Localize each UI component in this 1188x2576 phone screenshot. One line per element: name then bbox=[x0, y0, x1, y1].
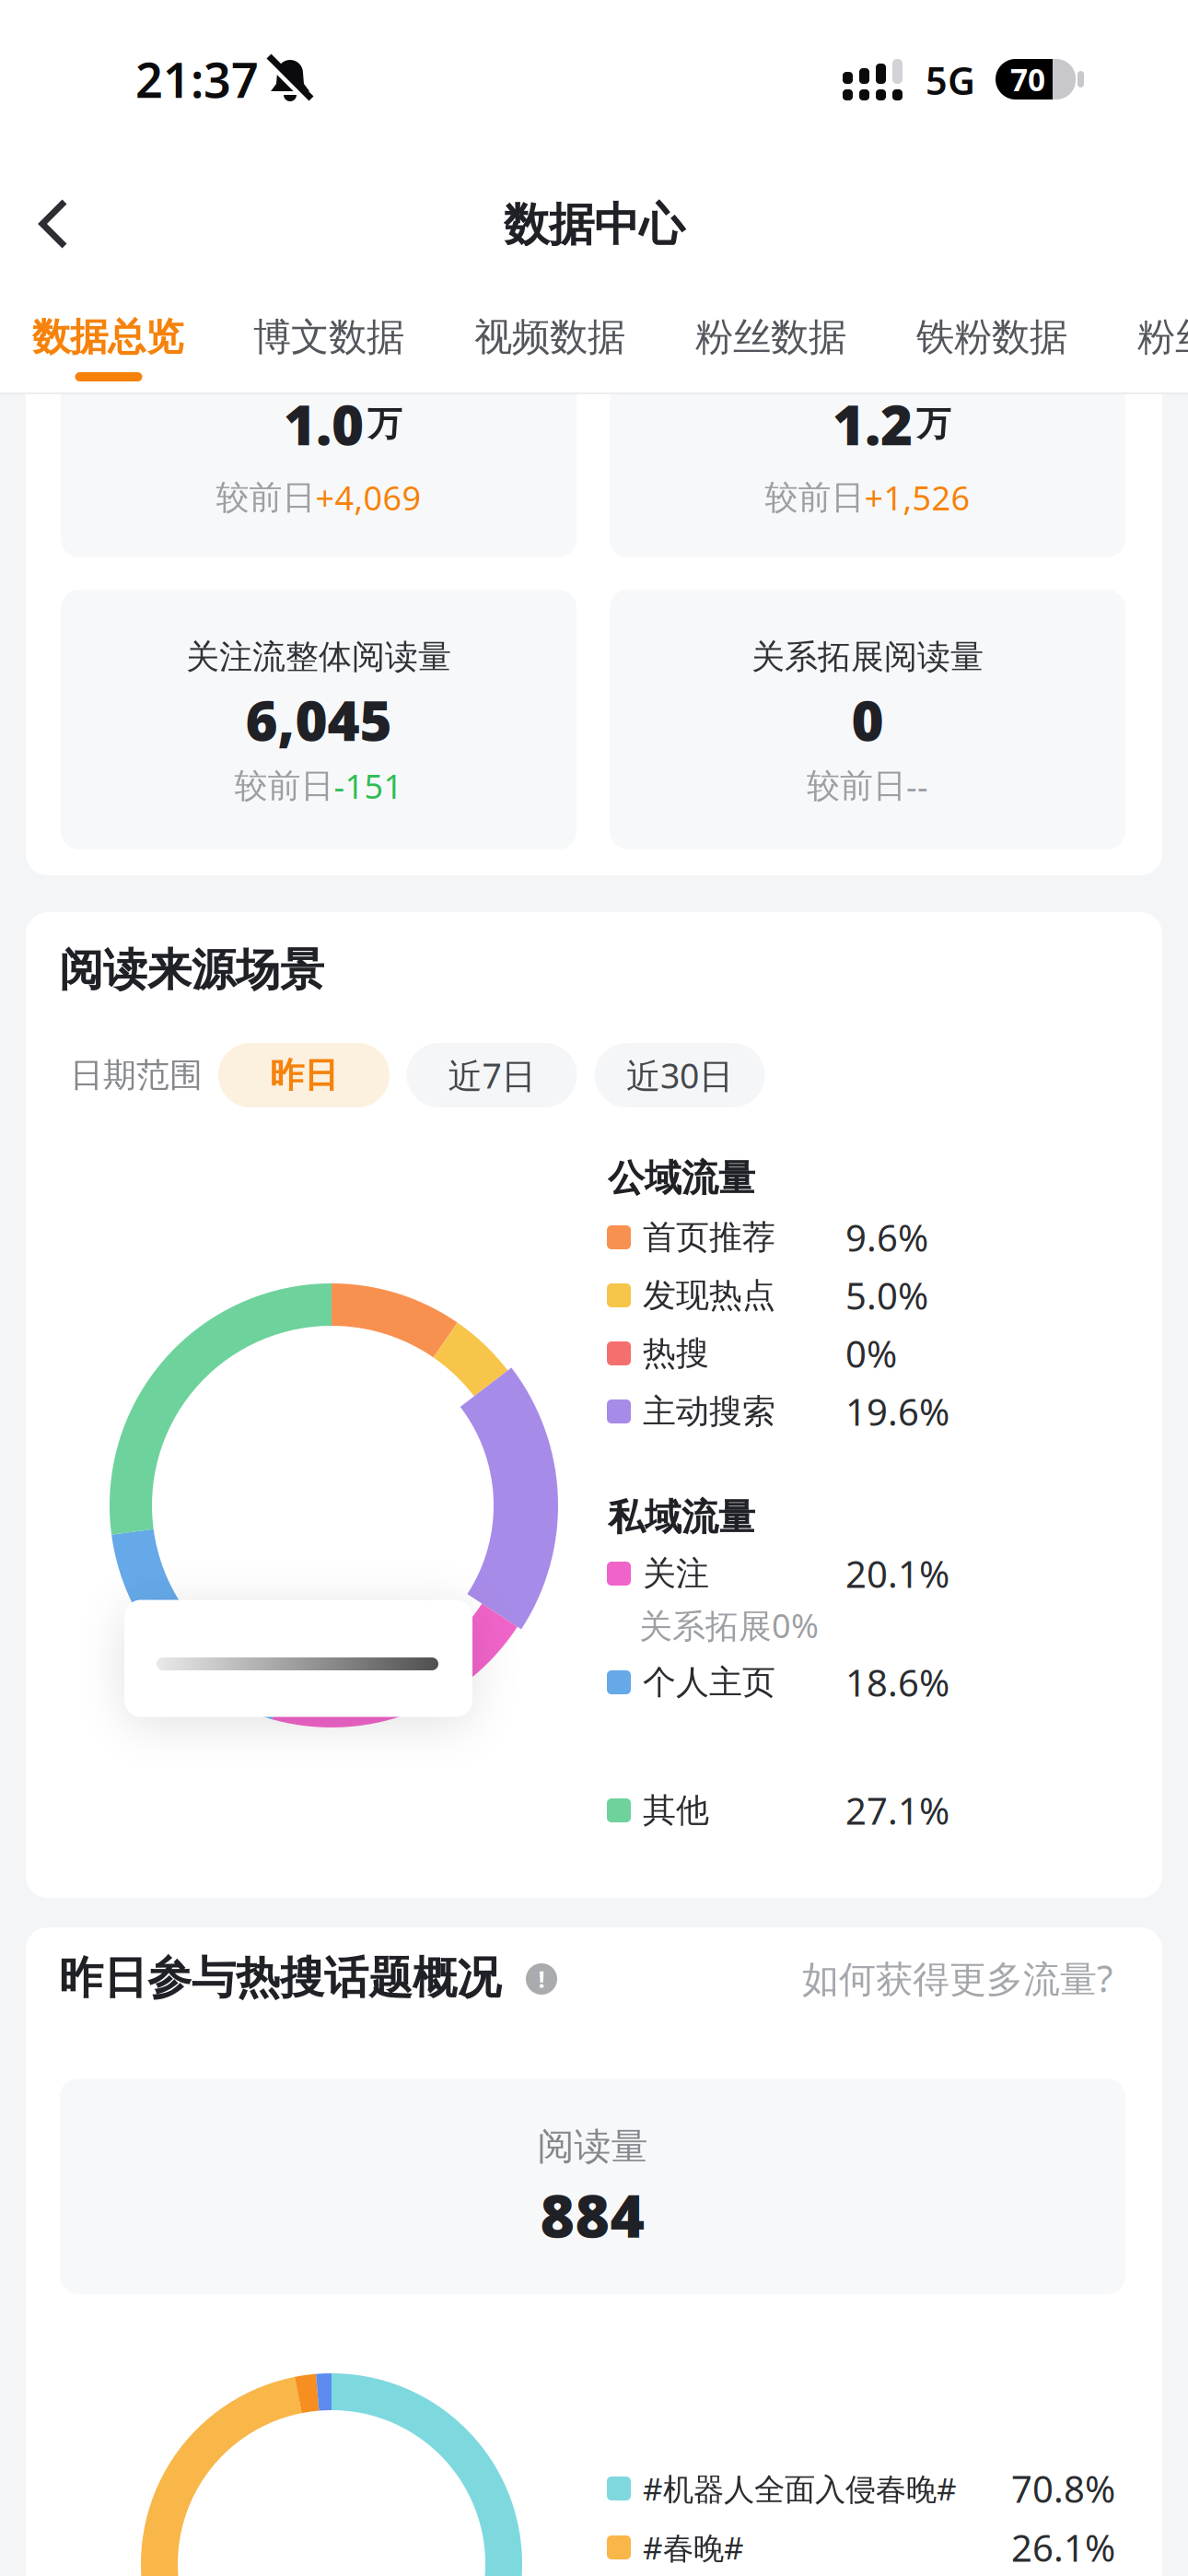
staticText: 27.1% bbox=[845, 1786, 949, 1835]
staticText: 19.6% bbox=[845, 1387, 949, 1436]
staticText: 热搜 bbox=[643, 1333, 709, 1374]
staticText: ! bbox=[538, 1964, 545, 1994]
staticText: 9.6% bbox=[845, 1213, 928, 1262]
staticText: -151 bbox=[334, 764, 403, 808]
staticText: 粉丝数据 bbox=[1137, 314, 1188, 361]
staticText: 5G bbox=[926, 55, 975, 105]
staticText: 5.0% bbox=[845, 1271, 928, 1320]
staticText: 公域流量 bbox=[608, 1156, 755, 1201]
staticText: 昨日参与热搜话题概况 bbox=[59, 1951, 501, 2005]
staticText: 1.2 bbox=[833, 387, 913, 461]
staticText: 884 bbox=[540, 2176, 645, 2254]
staticText: 较前日 bbox=[765, 477, 864, 518]
staticText: 日期范围 bbox=[70, 1055, 203, 1096]
staticText: 发现热点 bbox=[643, 1275, 775, 1316]
staticText: 近30日 bbox=[626, 1052, 733, 1098]
staticText: +1,526 bbox=[864, 475, 970, 520]
staticText: 较前日 bbox=[807, 766, 906, 806]
staticText: 1.0 bbox=[284, 387, 364, 461]
staticText: 个人主页 bbox=[643, 1662, 775, 1703]
staticText: 数据中心 bbox=[504, 197, 684, 253]
staticText: #春晚# bbox=[643, 2527, 744, 2568]
button[interactable]: 视频数据 bbox=[474, 314, 625, 361]
staticText: 关系拓展0% bbox=[639, 1603, 819, 1647]
staticText: 数据总览 bbox=[32, 314, 183, 361]
button[interactable]: 铁粉数据 bbox=[916, 314, 1067, 361]
button[interactable]: 博文数据 bbox=[253, 314, 404, 361]
button[interactable]: 数据总览 bbox=[32, 314, 183, 361]
staticText: 26.1% bbox=[1011, 2523, 1115, 2572]
staticText: 阅读来源场景 bbox=[59, 943, 324, 997]
button[interactable]: 昨日 bbox=[218, 1043, 390, 1107]
staticText: 昨日 bbox=[270, 1054, 338, 1096]
button[interactable]: 如何获得更多流量? bbox=[744, 1952, 1112, 2004]
staticText: 6,045 bbox=[245, 683, 392, 756]
staticText: 私域流量 bbox=[608, 1495, 755, 1540]
staticText: -- bbox=[906, 764, 928, 808]
staticText: 阅读量 bbox=[537, 2124, 648, 2169]
button[interactable]: 粉丝数据 bbox=[1137, 314, 1188, 361]
staticText: #机器人全面入侵春晚# bbox=[643, 2468, 957, 2509]
button[interactable]: 说明 bbox=[526, 1963, 557, 1995]
button[interactable]: 近7日 bbox=[407, 1043, 577, 1107]
staticText: 关注 bbox=[643, 1553, 709, 1594]
staticText: 0 bbox=[851, 683, 884, 756]
staticText: 万 bbox=[916, 403, 950, 445]
staticText: 万 bbox=[367, 403, 402, 445]
staticText: 视频数据 bbox=[474, 314, 625, 361]
staticText: +4,069 bbox=[315, 475, 421, 520]
staticText: 关注流整体阅读量 bbox=[186, 637, 451, 677]
staticText: 70.8% bbox=[1011, 2464, 1115, 2513]
staticText: 铁粉数据 bbox=[916, 314, 1067, 361]
staticText: 18.6% bbox=[845, 1658, 949, 1707]
staticText: 较前日 bbox=[216, 477, 315, 518]
staticText: 0% bbox=[845, 1329, 897, 1378]
staticText: 如何获得更多流量? bbox=[802, 1954, 1112, 2002]
staticText: 21:37 bbox=[135, 47, 259, 111]
staticText: 首页推荐 bbox=[643, 1217, 775, 1258]
staticText: 其他 bbox=[643, 1790, 709, 1831]
staticText: 20.1% bbox=[845, 1549, 949, 1598]
staticText: 博文数据 bbox=[253, 314, 404, 361]
staticText: 近7日 bbox=[448, 1052, 536, 1098]
button[interactable]: Back bbox=[26, 191, 92, 257]
staticText: 主动搜索 bbox=[643, 1391, 775, 1432]
staticText: 较前日 bbox=[234, 766, 334, 806]
staticText: 关系拓展阅读量 bbox=[751, 637, 984, 677]
button[interactable]: 粉丝数据 bbox=[695, 314, 846, 361]
button[interactable]: 近30日 bbox=[594, 1043, 765, 1107]
staticText: 粉丝数据 bbox=[695, 314, 846, 361]
staticText: 70 bbox=[1010, 59, 1045, 100]
